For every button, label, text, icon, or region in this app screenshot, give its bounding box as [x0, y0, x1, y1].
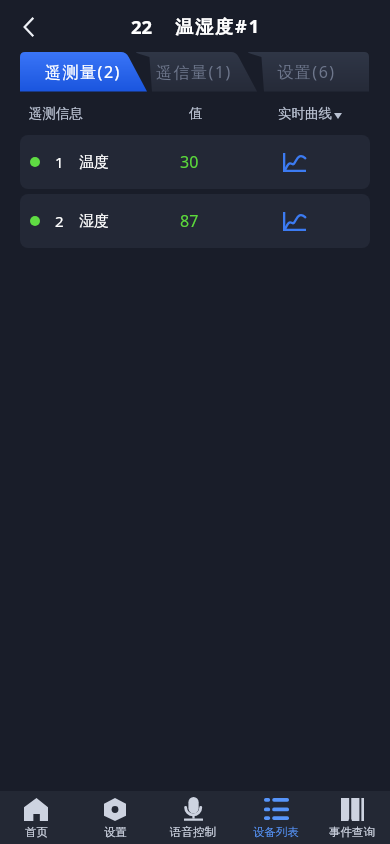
staticText: 实时曲线 — [278, 105, 332, 122]
button[interactable]: 设置(6) — [246, 52, 366, 92]
button[interactable]: 设备列表 — [237, 791, 315, 844]
button[interactable]: 语音控制 — [154, 791, 232, 844]
staticText: 87 — [180, 210, 199, 232]
staticText: 遥信量(1) — [156, 61, 232, 83]
staticText: 遥测信息 — [29, 105, 83, 122]
staticText: 湿度 — [79, 212, 109, 231]
staticText: 设置 — [104, 825, 127, 839]
button[interactable]: 2 — [20, 194, 370, 248]
staticText: 30 — [180, 151, 199, 173]
button[interactable]: 事件查询 — [313, 791, 390, 844]
staticText: 温湿度#1 — [175, 14, 261, 39]
staticText: 值 — [189, 105, 203, 122]
staticText: 遥测量(2) — [45, 61, 121, 83]
button[interactable]: 实时曲线 — [279, 147, 309, 177]
staticText: 事件查询 — [329, 825, 375, 839]
staticText: 1 — [55, 152, 64, 172]
button[interactable]: 首页 — [0, 791, 75, 844]
button[interactable]: 设置 — [76, 791, 154, 844]
staticText: 2 — [55, 211, 64, 231]
staticText: 22 — [131, 14, 153, 39]
staticText: 温度 — [79, 153, 109, 172]
button[interactable]: 实时曲线 — [279, 206, 309, 236]
staticText: 首页 — [25, 825, 48, 839]
staticText: 设置(6) — [277, 61, 336, 83]
button[interactable]: 遥信量(1) — [134, 52, 254, 92]
staticText: 语音控制 — [170, 825, 216, 839]
button[interactable]: 实时曲线 — [278, 105, 342, 122]
button[interactable]: Back — [11, 9, 47, 45]
staticText: 设备列表 — [253, 825, 299, 839]
button[interactable]: 1 — [20, 135, 370, 189]
button[interactable]: 遥测量(2) — [23, 52, 143, 92]
